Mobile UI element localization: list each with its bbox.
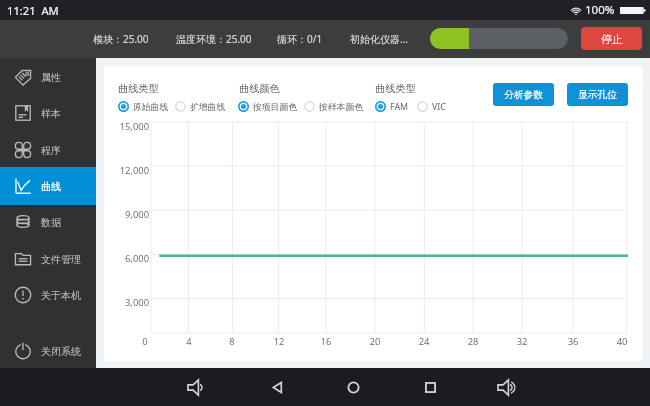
button[interactable]: Back [260, 370, 294, 404]
button[interactable]: 程序 [0, 131, 96, 169]
button[interactable]: 样本 [0, 94, 96, 132]
button[interactable]: Volume up [489, 370, 523, 404]
staticText: 4 [179, 335, 199, 348]
staticText: 28 [463, 335, 483, 348]
button[interactable]: Volume down [179, 370, 213, 404]
staticText: 温度环境：25.00 [176, 32, 252, 46]
staticText: 11:21 AM [7, 3, 59, 18]
button[interactable]: Recent apps [413, 370, 447, 404]
staticText: 分析参数 [504, 89, 544, 101]
staticText: 曲线 [41, 180, 61, 193]
staticText: 6,000 [104, 252, 149, 265]
button[interactable]: 按项目颜色 [238, 99, 297, 115]
staticText: 16 [316, 335, 336, 348]
staticText: 样本 [41, 107, 61, 120]
staticText: 循环：0/1 [277, 32, 323, 46]
staticText: 曲线类型 [375, 82, 416, 95]
staticText: 扩增曲线 [190, 102, 226, 113]
button[interactable]: VIC [417, 99, 446, 115]
staticText: 32 [512, 335, 532, 348]
staticText: 100% [585, 2, 615, 18]
button[interactable]: 文件管理 [0, 240, 96, 278]
staticText: 停止 [601, 32, 623, 46]
staticText: 8 [222, 335, 242, 348]
staticText: 40 [612, 335, 632, 348]
button[interactable]: 显示孔位 [567, 83, 628, 106]
button[interactable]: Home [336, 370, 370, 404]
staticText: 20 [365, 335, 385, 348]
staticText: 36 [563, 335, 583, 348]
button[interactable]: 按样本颜色 [304, 99, 363, 115]
staticText: VIC [432, 101, 446, 113]
button[interactable]: FAM [375, 99, 408, 115]
button[interactable]: 关于本机 [0, 276, 96, 314]
staticText: 初始化仪器... [350, 32, 409, 46]
staticText: 9,000 [104, 208, 149, 221]
staticText: 属性 [41, 71, 61, 84]
staticText: 曲线颜色 [239, 82, 280, 95]
staticText: 显示孔位 [578, 89, 618, 101]
staticText: 12 [269, 335, 289, 348]
staticText: 0 [135, 335, 155, 348]
staticText: 程序 [41, 144, 61, 157]
staticText: 按样本颜色 [319, 102, 363, 113]
button[interactable]: 关闭系统 [0, 332, 96, 370]
staticText: 15,000 [104, 120, 149, 133]
staticText: 3,000 [104, 296, 149, 309]
button[interactable]: 数据 [0, 203, 96, 241]
button[interactable]: 停止 [581, 27, 642, 50]
staticText: 曲线类型 [118, 82, 159, 95]
button[interactable]: 原始曲线 [118, 99, 169, 115]
staticText: FAM [390, 101, 408, 113]
button[interactable]: 扩增曲线 [175, 99, 226, 115]
staticText: 按项目颜色 [253, 102, 297, 113]
staticText: 原始曲线 [133, 102, 169, 113]
button[interactable]: 属性 [0, 58, 96, 96]
button[interactable]: 分析参数 [493, 83, 554, 106]
staticText: 24 [414, 335, 434, 348]
staticText: 12,000 [104, 164, 149, 177]
staticText: 数据 [41, 216, 61, 229]
staticText: 关闭系统 [41, 345, 81, 358]
staticText: 文件管理 [41, 253, 81, 266]
staticText: 模块：25.00 [93, 32, 149, 46]
button[interactable]: 曲线 [0, 167, 96, 205]
staticText: 关于本机 [41, 289, 81, 302]
